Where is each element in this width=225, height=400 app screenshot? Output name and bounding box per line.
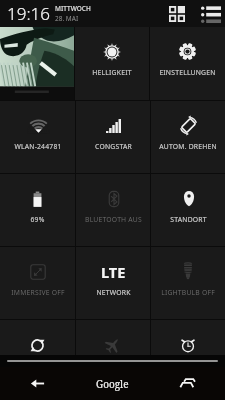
button[interactable]: BLUETOOTH AUS [76, 174, 150, 246]
button[interactable]: Grid view [163, 0, 190, 27]
staticText: BLUETOOTH AUS [85, 215, 142, 224]
staticText: LIGHTBULB OFF [161, 288, 215, 297]
staticText: AUTOM. DREHEN [159, 142, 217, 151]
button[interactable]: List view [197, 0, 224, 27]
staticText: LTE [101, 262, 126, 278]
button[interactable]: WLAN-244781 [0, 101, 75, 173]
staticText: 69% [30, 215, 45, 224]
staticText: IMMERSIVE OFF [11, 288, 65, 297]
button[interactable]: AUTOM. DREHEN [151, 101, 225, 173]
staticText: 28. MAI [55, 14, 79, 23]
button[interactable]: 69% [0, 174, 75, 246]
button[interactable]: STANDORT [151, 174, 225, 246]
button[interactable]: IMMERSIVE OFF [0, 247, 75, 319]
staticText: NETWORK [96, 288, 131, 297]
button[interactable]: Alarm [151, 320, 225, 355]
staticText: WLAN-244781 [14, 142, 62, 151]
button[interactable]: Back [0, 367, 75, 400]
button[interactable]: Airplane mode [76, 320, 150, 355]
staticText: Google [96, 377, 129, 391]
staticText: CONGSTAR [95, 142, 132, 151]
button[interactable]: Recent apps [150, 367, 225, 400]
button[interactable]: Sync [0, 320, 75, 355]
staticText: 19:16 [7, 2, 50, 25]
button[interactable]: Google [75, 367, 150, 400]
staticText: HELLIGKEIT [92, 68, 132, 77]
button[interactable]: EINSTELLUNGEN [150, 27, 225, 100]
staticText: MITTWOCH [55, 4, 91, 13]
button[interactable]: CONGSTAR [76, 101, 150, 173]
button[interactable]: LTE [76, 247, 150, 319]
button[interactable]: LIGHTBULB OFF [151, 247, 225, 319]
staticText: EINSTELLUNGEN [159, 68, 216, 77]
staticText: STANDORT [170, 215, 207, 224]
button[interactable]: Drag handle [7, 360, 218, 362]
button[interactable]: HELLIGKEIT [75, 27, 149, 100]
